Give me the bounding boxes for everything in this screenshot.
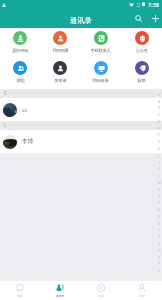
button[interactable]: 通讯录 — [40, 281, 80, 300]
button[interactable]: 我的同事 — [40, 28, 80, 58]
staticText: # — [158, 93, 161, 97]
button[interactable]: 群组 — [0, 58, 40, 88]
staticText: 标签 — [137, 78, 146, 84]
staticText: 李博 — [22, 138, 33, 145]
staticText: P — [158, 201, 160, 205]
staticText: U — [158, 235, 161, 239]
staticText: 群组 — [16, 78, 25, 84]
staticText: 消息 — [17, 294, 23, 298]
staticText: T — [158, 229, 160, 233]
staticText: Z — [158, 269, 160, 273]
staticText: L — [158, 174, 160, 178]
button[interactable]: 公众号 — [121, 28, 162, 58]
button[interactable]: 消息 — [0, 281, 40, 300]
button[interactable]: 李博 — [0, 130, 162, 153]
button[interactable]: Add — [147, 10, 162, 27]
staticText: 我的设备 — [92, 78, 109, 84]
button[interactable]: 发现 — [80, 281, 121, 300]
staticText: 新的朋友 — [12, 48, 29, 54]
staticText: A — [158, 100, 161, 104]
staticText: 黑名单 — [54, 78, 67, 84]
staticText: M — [158, 181, 161, 185]
staticText: E — [158, 127, 160, 131]
button[interactable]: 我的设备 — [80, 58, 121, 88]
staticText: 通讯录 — [70, 16, 92, 25]
staticText: F — [158, 133, 160, 137]
staticText: cc — [22, 106, 28, 113]
staticText: Y — [158, 262, 160, 266]
staticText: L — [4, 122, 7, 129]
button[interactable]: 手机联系人 — [80, 28, 121, 58]
staticText: D — [158, 120, 161, 124]
staticText: S — [158, 222, 160, 226]
staticText: I — [158, 154, 160, 158]
staticText: R — [158, 215, 160, 219]
staticText: H — [158, 147, 161, 151]
staticText: 发现 — [98, 294, 104, 298]
button[interactable]: 标签 — [121, 58, 162, 88]
staticText: B — [158, 106, 161, 110]
staticText: K — [158, 167, 160, 171]
staticText: C — [158, 113, 161, 117]
button[interactable]: Search — [130, 10, 147, 27]
button[interactable]: 黑名单 — [40, 58, 80, 88]
staticText: C — [4, 90, 8, 97]
staticText: N — [158, 188, 161, 192]
staticText: 我的 — [139, 294, 145, 298]
staticText: 手机联系人 — [90, 48, 111, 54]
staticText: 通讯录 — [56, 294, 65, 298]
staticText: V — [158, 242, 160, 246]
staticText: 公众号 — [135, 48, 148, 54]
staticText: X — [158, 256, 160, 260]
staticText: O — [158, 195, 161, 199]
staticText: Q — [158, 208, 161, 212]
staticText: 7:38 — [148, 1, 160, 9]
staticText: G — [158, 140, 161, 144]
button[interactable]: 新的朋友 — [0, 28, 40, 58]
staticText: W — [158, 249, 161, 253]
staticText: 我的同事 — [52, 48, 69, 54]
button[interactable]: 我的 — [121, 281, 162, 300]
button[interactable]: cc — [0, 98, 162, 121]
